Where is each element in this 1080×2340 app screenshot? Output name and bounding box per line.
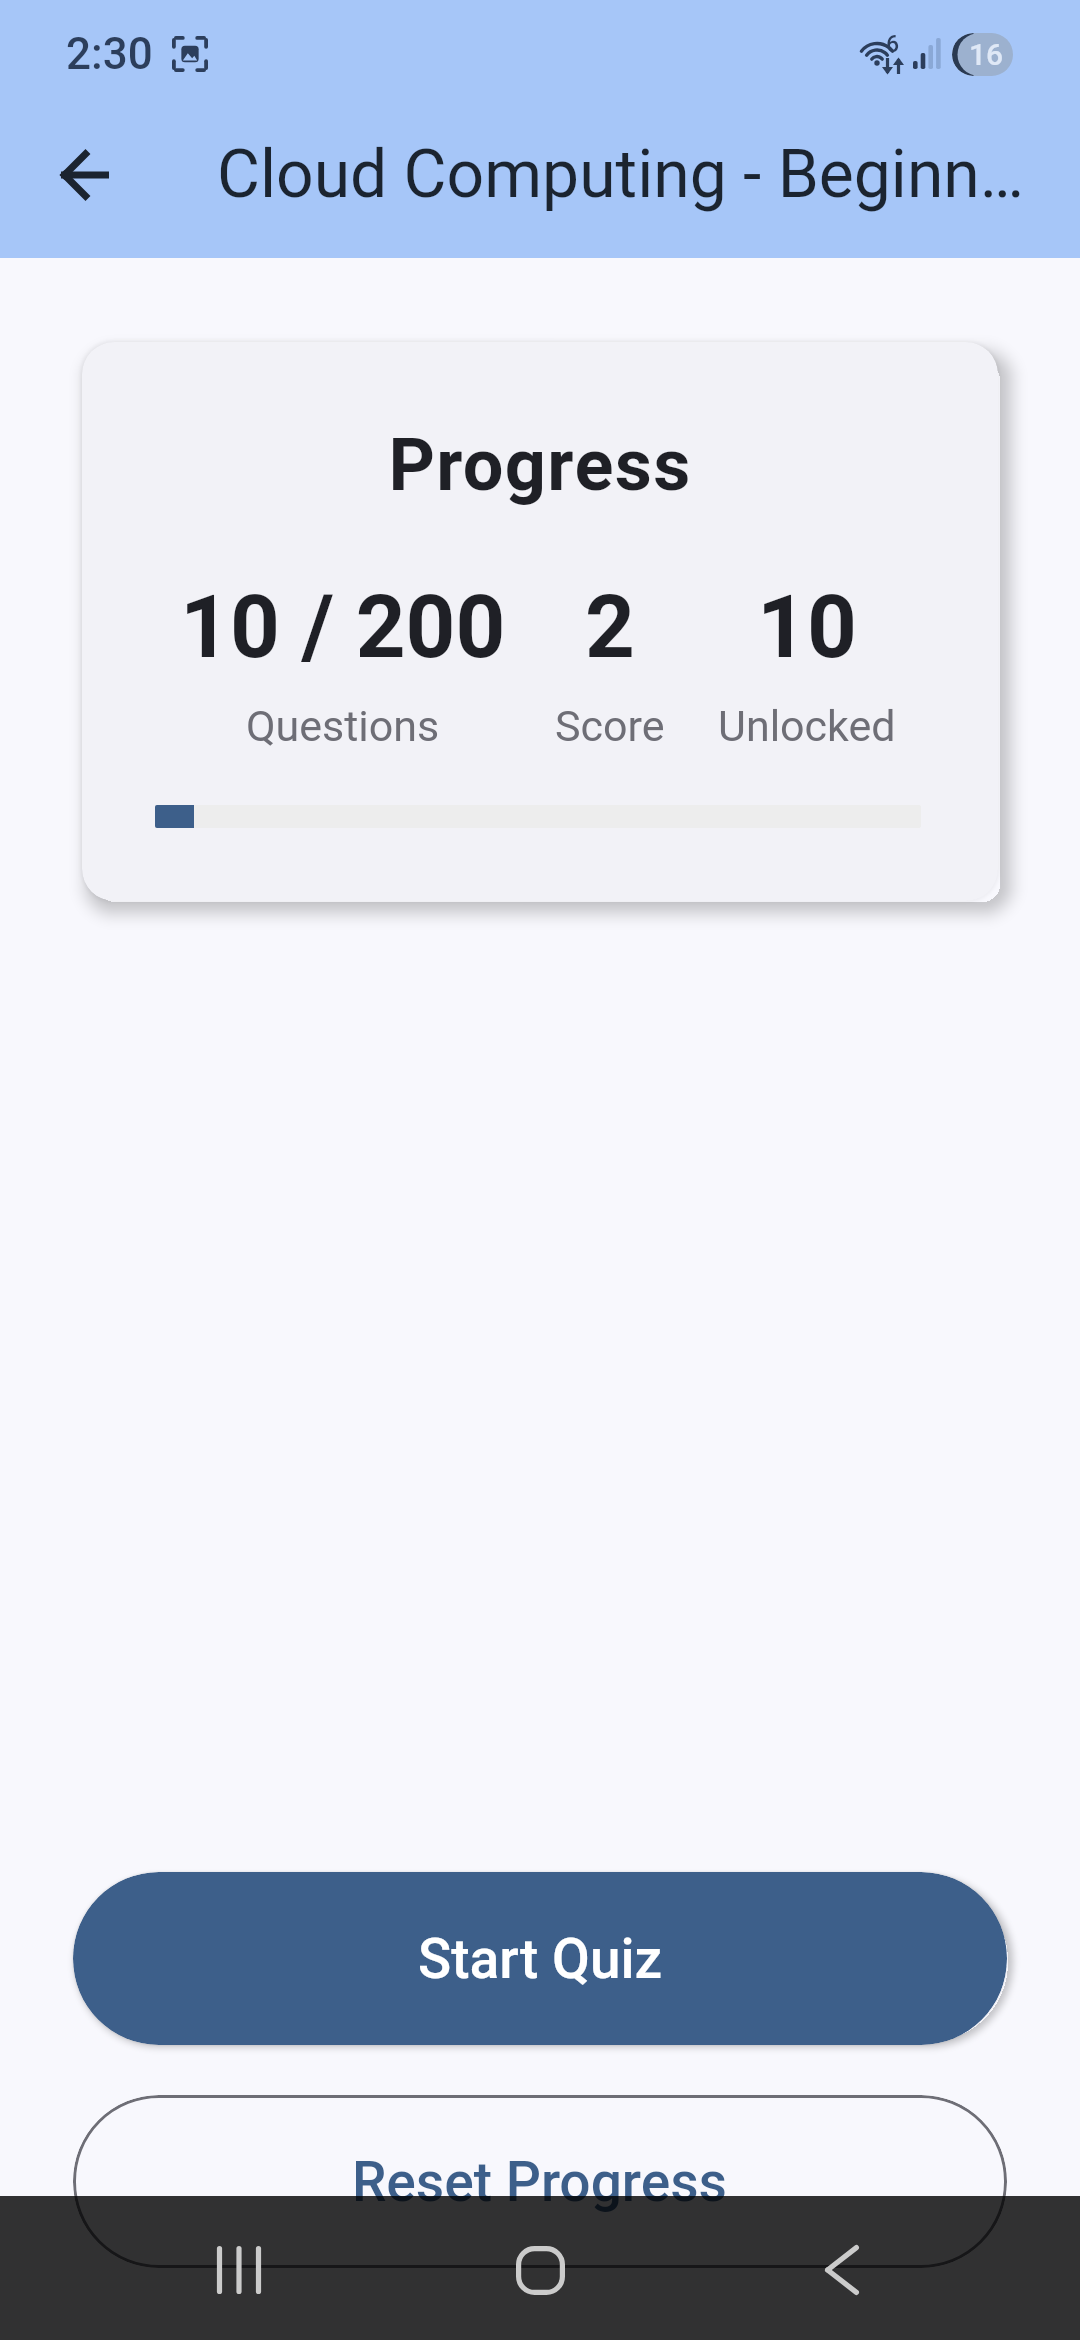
staticText: 10 (757, 576, 857, 678)
button[interactable]: Back (24, 114, 145, 235)
staticText: Questions (246, 701, 440, 751)
staticText: 10 / 200 (180, 576, 506, 678)
staticText: Progress (82, 423, 998, 507)
staticText: Start Quiz (418, 1927, 663, 1991)
button[interactable]: Reset Progress (73, 2095, 1007, 2268)
staticText: Reset Progress (352, 2150, 728, 2214)
button[interactable]: Start Quiz (73, 1872, 1007, 2045)
staticText: Cloud Computing - Beginn… (217, 136, 1024, 213)
staticText: Score (555, 701, 665, 751)
staticText: 16 (969, 37, 1004, 72)
button[interactable]: Home (468, 2198, 612, 2340)
staticText: 2:30 (66, 28, 153, 80)
button[interactable]: Back (770, 2198, 914, 2340)
staticText: Unlocked (718, 701, 896, 751)
button[interactable]: Recent apps (167, 2198, 311, 2340)
staticText: 6 (886, 31, 900, 58)
staticText: 2 (585, 576, 635, 678)
